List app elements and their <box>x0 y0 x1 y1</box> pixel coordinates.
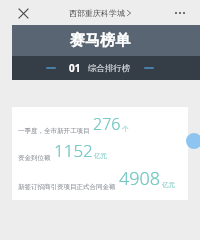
staticText: 西部重庆科学城 <box>69 8 125 18</box>
staticText: 一季度，全市新开工项目 <box>18 127 90 135</box>
staticText: 综合排行榜 <box>88 63 131 74</box>
button[interactable]: More options <box>170 3 190 23</box>
button[interactable]: Close <box>14 4 32 22</box>
button[interactable]: 西部重庆科学城 <box>69 8 131 18</box>
staticText: 赛马榜单 <box>70 31 130 50</box>
staticText: 个 <box>122 125 129 133</box>
staticText: 276 <box>93 113 121 135</box>
staticText: 亿元 <box>94 152 107 160</box>
button[interactable]: 01 <box>12 56 200 80</box>
staticText: 4908 <box>119 166 161 191</box>
button[interactable]: Scroll indicator <box>186 133 200 149</box>
staticText: 新签订招商引资项目正式合同金额 <box>18 183 116 191</box>
staticText: 亿元 <box>162 181 175 189</box>
staticText: 01 <box>69 61 81 75</box>
staticText: 资金到位额 <box>18 154 51 162</box>
staticText: 1152 <box>54 139 93 162</box>
